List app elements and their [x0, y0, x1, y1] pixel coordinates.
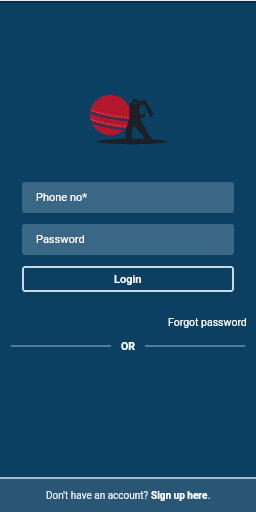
staticText: Sign up here: [151, 490, 208, 502]
button[interactable]: Password: [22, 224, 234, 255]
button[interactable]: Phone no*: [22, 182, 234, 213]
staticText: Forgot password: [168, 316, 247, 328]
staticText: OR: [121, 340, 135, 352]
other: Cricket app logo: [84, 88, 174, 148]
staticText: Phone no*: [36, 191, 87, 204]
staticText: Login: [114, 273, 142, 286]
staticText: Password: [36, 233, 85, 246]
button[interactable]: Login: [22, 266, 234, 292]
staticText: Don't have an account?: [46, 490, 151, 502]
staticText: .: [208, 490, 211, 502]
button[interactable]: Don't have an account?: [0, 479, 256, 512]
button[interactable]: Forgot password: [162, 313, 256, 331]
